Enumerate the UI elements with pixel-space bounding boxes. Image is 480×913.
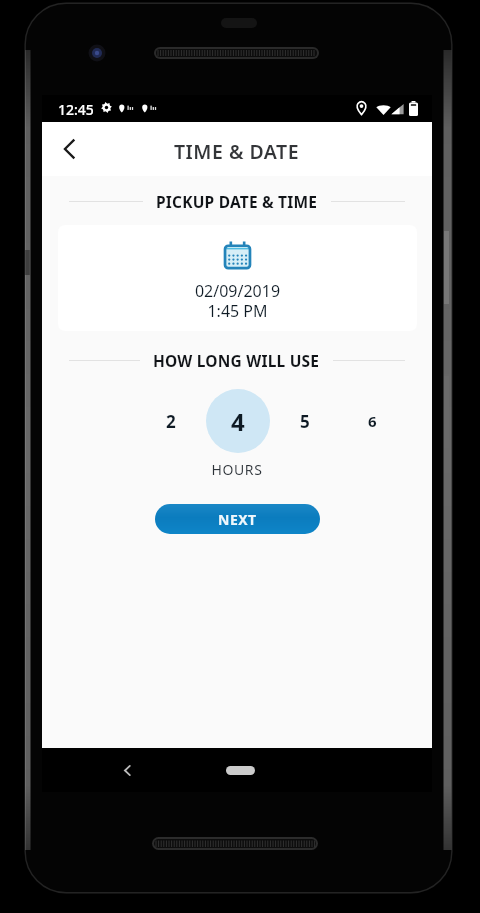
button[interactable]: 2 xyxy=(139,389,203,453)
button[interactable]: 4 xyxy=(206,389,270,453)
staticText: 12:45 xyxy=(58,100,94,119)
staticText: TIME & DATE xyxy=(174,138,300,165)
button[interactable]: Back xyxy=(46,125,94,173)
button[interactable]: 6 xyxy=(340,389,404,453)
staticText: 4 xyxy=(231,405,245,438)
staticText: 02/09/2019 xyxy=(58,280,417,302)
button[interactable]: 5 xyxy=(273,389,337,453)
button[interactable]: Home xyxy=(226,766,255,775)
staticText: PICKUP DATE & TIME xyxy=(156,191,318,211)
staticText: 5 xyxy=(300,410,310,433)
staticText: 1:45 PM xyxy=(58,300,417,322)
button[interactable]: NEXT xyxy=(155,504,320,534)
button[interactable]: 02/09/2019 xyxy=(58,225,417,331)
staticText: HOURS xyxy=(42,460,432,479)
button[interactable]: Back xyxy=(110,753,144,787)
staticText: 2 xyxy=(166,410,176,433)
staticText: 6 xyxy=(368,411,377,431)
staticText: NEXT xyxy=(218,510,257,529)
staticText: HOW LONG WILL USE xyxy=(153,350,320,370)
